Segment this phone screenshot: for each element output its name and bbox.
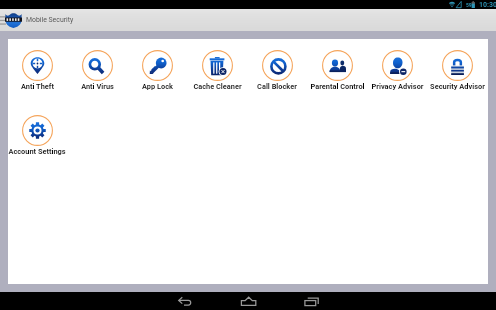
staticText: Mobile Security <box>26 16 74 24</box>
staticText: Call Blocker <box>257 82 297 91</box>
staticText: Cache Cleaner <box>193 82 242 91</box>
button[interactable]: Privacy Advisor <box>367 50 427 92</box>
button[interactable]: Open navigation drawer <box>0 9 6 31</box>
button[interactable]: Call Blocker <box>247 50 307 92</box>
staticText: App Lock <box>142 82 173 91</box>
button[interactable]: Home <box>236 292 260 310</box>
button[interactable]: Back <box>174 292 198 310</box>
button[interactable]: Recent apps <box>299 292 323 310</box>
button[interactable]: App Lock <box>127 50 187 92</box>
staticText: Parental Control <box>310 82 365 91</box>
button[interactable]: Anti Virus <box>67 50 127 92</box>
button[interactable]: Cache Cleaner <box>187 50 247 92</box>
staticText: Privacy Advisor <box>371 82 424 91</box>
button[interactable]: Security Advisor <box>427 50 487 92</box>
button[interactable]: Account Settings <box>7 115 67 157</box>
staticText: 10:30 <box>479 1 496 9</box>
staticText: 59 <box>466 2 472 8</box>
staticText: Anti Theft <box>21 82 54 91</box>
staticText: Account Settings <box>8 147 66 156</box>
button[interactable]: Anti Theft <box>7 50 67 92</box>
staticText: Security Advisor <box>430 82 485 91</box>
button[interactable]: Parental Control <box>307 50 367 92</box>
staticText: Anti Virus <box>81 82 114 91</box>
